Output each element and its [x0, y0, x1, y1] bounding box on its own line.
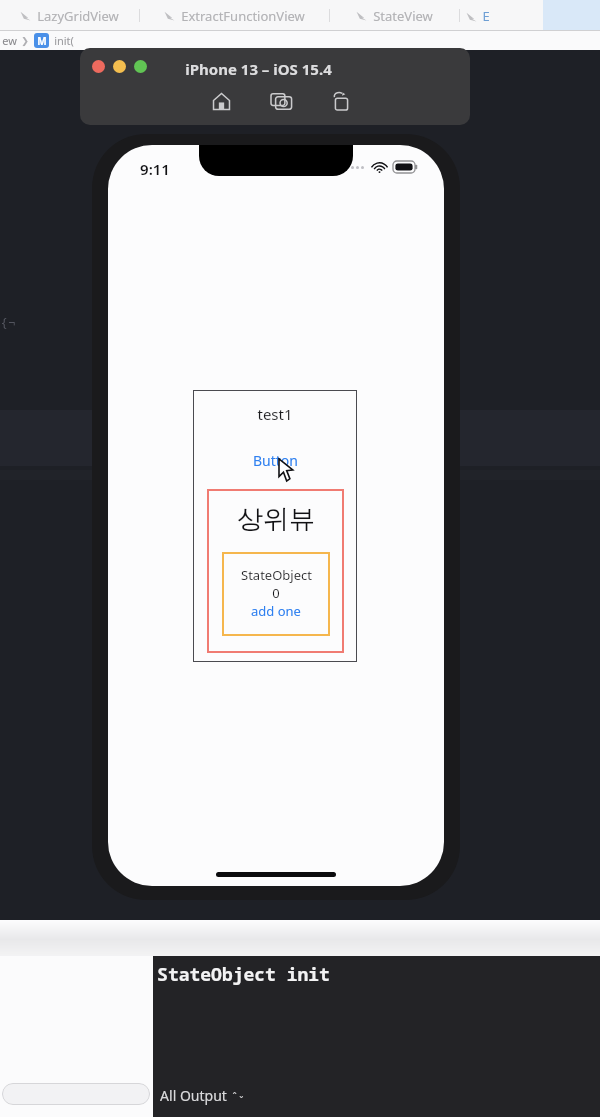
staticText: E: [482, 7, 490, 25]
staticText: add one: [251, 602, 301, 620]
staticText: ExtractFunctionView: [181, 7, 305, 25]
staticText: 0: [272, 584, 280, 602]
staticText: StateObject: [241, 566, 312, 584]
staticText: StateObject init: [157, 962, 330, 987]
staticText: All Output: [160, 1086, 227, 1105]
staticText: StateView: [373, 7, 433, 25]
button[interactable]: LazyGridView: [0, 0, 139, 31]
button[interactable]: [134, 60, 147, 73]
button[interactable]: add one: [245, 602, 307, 620]
button[interactable]: StateView: [330, 0, 459, 31]
button[interactable]: Rotate: [328, 88, 355, 115]
staticText: ❯: [21, 36, 29, 46]
button[interactable]: ExtractFunctionView: [140, 0, 329, 31]
staticText: ⌃⌄: [231, 1091, 245, 1100]
staticText: Button: [253, 451, 298, 470]
button[interactable]: All Output: [160, 1086, 245, 1105]
button[interactable]: [2, 1083, 150, 1105]
staticText: {¬: [0, 313, 16, 331]
staticText: 9:11: [140, 159, 170, 179]
staticText: ew: [2, 33, 17, 48]
staticText: 상위뷰: [237, 503, 315, 536]
staticText: init(: [54, 33, 74, 48]
staticText: test1: [257, 404, 293, 424]
button[interactable]: Button: [247, 449, 304, 472]
button[interactable]: [113, 60, 126, 73]
staticText: LazyGridView: [37, 7, 119, 25]
button[interactable]: Screenshot: [267, 89, 296, 114]
staticText: M: [37, 34, 47, 48]
staticText: iPhone 13 – iOS 15.4: [185, 59, 332, 79]
button[interactable]: Home: [208, 88, 235, 115]
button[interactable]: E: [460, 7, 490, 25]
button[interactable]: [92, 60, 105, 73]
